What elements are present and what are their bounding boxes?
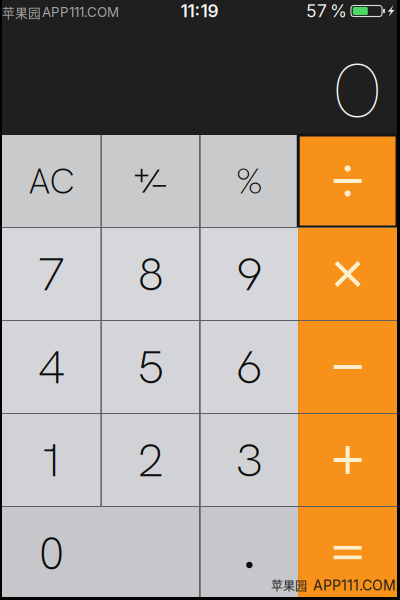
- button[interactable]: Subtract: [298, 321, 397, 413]
- button[interactable]: 7: [2, 228, 101, 320]
- staticText: %: [236, 157, 263, 204]
- button[interactable]: AC: [2, 135, 101, 227]
- button[interactable]: 8: [102, 228, 200, 320]
- staticText: APP111.COM: [313, 577, 396, 594]
- staticText: 9: [236, 244, 262, 304]
- button[interactable]: Equals: [298, 507, 397, 599]
- button[interactable]: Plus minus: [102, 135, 200, 227]
- staticText: 2: [138, 430, 164, 490]
- staticText: 57 %: [306, 0, 347, 21]
- button[interactable]: 3: [200, 414, 298, 506]
- staticText: 8: [138, 244, 164, 304]
- staticText: 4: [38, 337, 64, 397]
- button[interactable]: 4: [2, 321, 101, 413]
- staticText: 0: [38, 523, 64, 583]
- staticText: AC: [28, 157, 74, 204]
- button[interactable]: 1: [2, 414, 101, 506]
- button[interactable]: 9: [200, 228, 298, 320]
- staticText: 苹果园: [2, 3, 41, 21]
- staticText: 7: [38, 244, 64, 304]
- staticText: 3: [236, 430, 262, 490]
- staticText: 6: [236, 337, 262, 397]
- staticText: 0: [332, 43, 382, 137]
- button[interactable]: 0: [2, 507, 199, 599]
- button[interactable]: Multiply: [298, 228, 397, 320]
- button[interactable]: Decimal point: [200, 507, 298, 599]
- staticText: APP111.COM: [42, 4, 119, 20]
- button[interactable]: Divide: [298, 135, 397, 227]
- staticText: 5: [138, 337, 164, 397]
- button[interactable]: Add: [298, 414, 397, 506]
- button[interactable]: 5: [102, 321, 200, 413]
- staticText: 苹果园: [271, 577, 307, 594]
- staticText: 1: [38, 430, 64, 490]
- button[interactable]: 2: [102, 414, 200, 506]
- button[interactable]: %: [200, 135, 298, 227]
- staticText: 11:19: [180, 0, 218, 21]
- button[interactable]: 6: [200, 321, 298, 413]
